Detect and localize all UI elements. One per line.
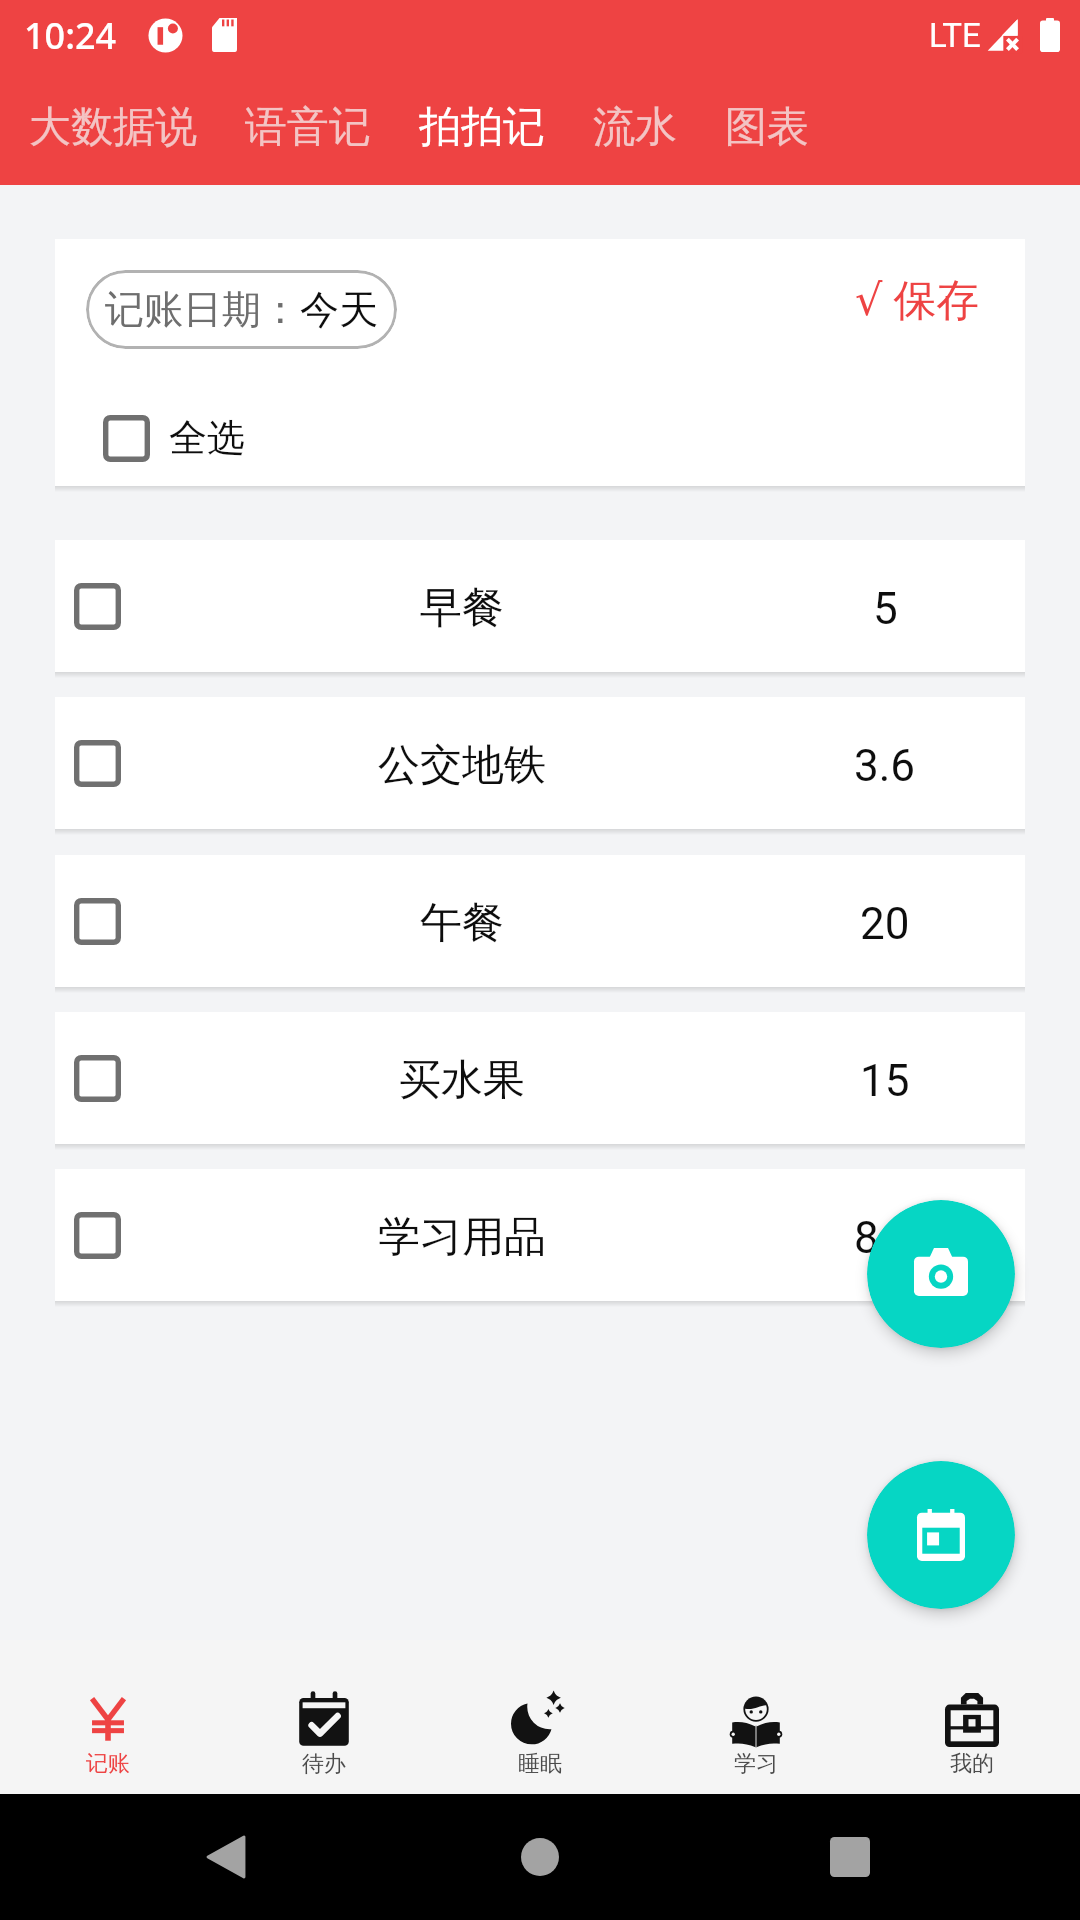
button[interactable]: 记账: [0, 1640, 216, 1794]
button[interactable]: 大数据说: [5, 89, 221, 166]
button[interactable]: 全选: [95, 406, 263, 470]
staticText: 公交地铁: [378, 739, 546, 792]
staticText: 记账日期：: [105, 285, 300, 334]
button[interactable]: Take photo: [867, 1200, 1015, 1348]
button[interactable]: 图表: [701, 89, 833, 166]
button[interactable]: 拍拍记: [395, 89, 569, 166]
staticText: 3.6: [854, 740, 916, 792]
button[interactable]: 待办: [216, 1640, 432, 1794]
staticText: 睡眠: [518, 1750, 562, 1778]
staticText: LTE: [929, 16, 981, 55]
staticText: √ 保存: [855, 269, 980, 328]
button[interactable]: 流水: [569, 89, 701, 166]
staticText: 大数据说: [29, 101, 197, 154]
button[interactable]: 早餐: [55, 540, 1025, 672]
staticText: 15: [860, 1055, 910, 1107]
staticText: 学习用品: [378, 1211, 546, 1264]
button[interactable]: 午餐: [55, 855, 1025, 987]
staticText: 10:24: [24, 11, 117, 60]
staticText: 5: [873, 583, 898, 635]
staticText: 8.5: [854, 1212, 916, 1264]
button[interactable]: 语音记: [221, 89, 395, 166]
staticText: 记账: [86, 1750, 130, 1778]
button[interactable]: Home: [504, 1821, 576, 1893]
staticText: 午餐: [420, 897, 504, 950]
button[interactable]: √ 保存: [825, 255, 1025, 342]
staticText: 图表: [725, 101, 809, 154]
button[interactable]: 学习用品: [55, 1169, 1025, 1301]
staticText: 拍拍记: [419, 101, 545, 154]
staticText: 买水果: [399, 1054, 525, 1107]
staticText: 学习: [734, 1750, 778, 1778]
button[interactable]: 公交地铁: [55, 697, 1025, 829]
button[interactable]: 睡眠: [432, 1640, 648, 1794]
button[interactable]: Recent apps: [814, 1821, 886, 1893]
staticText: 今天: [300, 285, 378, 334]
staticText: 语音记: [245, 101, 371, 154]
button[interactable]: 学习: [648, 1640, 864, 1794]
staticText: 流水: [593, 101, 677, 154]
staticText: 待办: [302, 1750, 346, 1778]
button[interactable]: Pick date: [867, 1461, 1015, 1609]
staticText: 全选: [169, 414, 245, 462]
button[interactable]: 我的: [864, 1640, 1080, 1794]
staticText: 20: [860, 898, 910, 950]
staticText: 早餐: [420, 582, 504, 635]
staticText: 我的: [950, 1750, 994, 1778]
button[interactable]: 买水果: [55, 1012, 1025, 1144]
button[interactable]: 记账日期：: [86, 270, 397, 349]
button[interactable]: Back: [190, 1821, 262, 1893]
